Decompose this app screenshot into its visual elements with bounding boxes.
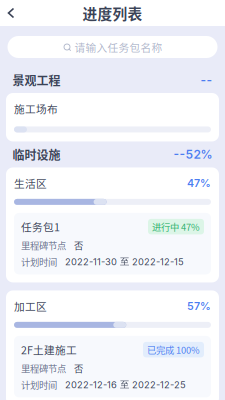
staticText: 任务包1 <box>21 219 60 234</box>
staticText: 请输入任务包名称 <box>74 39 162 55</box>
staticText: 加工区 <box>14 298 47 314</box>
staticText: 47% <box>187 177 211 190</box>
staticText: 2022-11-30 至 2022-12-15 <box>65 256 184 268</box>
staticText: 生活区 <box>14 175 47 191</box>
staticText: 里程碑节点 <box>21 238 66 252</box>
staticText: 计划时间 <box>21 255 57 268</box>
button[interactable]: Back <box>0 0 26 26</box>
button[interactable]: 请输入任务包名称 <box>7 36 217 58</box>
staticText: 已完成 100% <box>147 343 200 356</box>
staticText: 否 <box>74 238 83 252</box>
staticText: 景观工程 <box>12 71 60 89</box>
staticText: -- <box>200 73 212 87</box>
staticText: 进度列表 <box>82 2 142 24</box>
staticText: 计划时间 <box>21 378 57 391</box>
staticText: 2F土建施工 <box>21 342 77 357</box>
staticText: 施工场布 <box>14 101 58 116</box>
staticText: --52% <box>173 147 212 162</box>
staticText: 57% <box>187 300 211 313</box>
staticText: 临时设施 <box>12 146 60 163</box>
staticText: 里程碑节点 <box>21 361 66 375</box>
staticText: 否 <box>74 361 83 375</box>
staticText: 2022-12-16 至 2022-12-25 <box>65 379 186 391</box>
staticText: 进行中 47% <box>152 220 200 233</box>
